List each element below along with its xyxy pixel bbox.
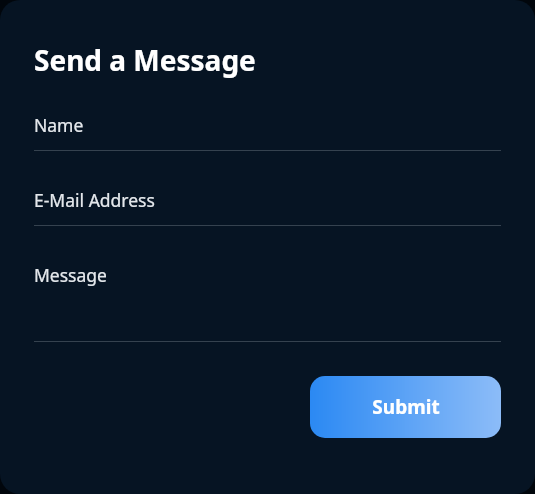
button[interactable]: Name — [34, 113, 501, 151]
staticText: Name — [34, 113, 84, 137]
staticText: E-Mail Address — [34, 188, 155, 212]
staticText: Submit — [372, 394, 440, 420]
staticText: Send a Message — [34, 41, 256, 79]
staticText: Message — [34, 263, 107, 287]
button[interactable]: Message — [34, 263, 501, 342]
button[interactable]: Submit — [310, 376, 501, 438]
button[interactable]: E-Mail Address — [34, 188, 501, 226]
